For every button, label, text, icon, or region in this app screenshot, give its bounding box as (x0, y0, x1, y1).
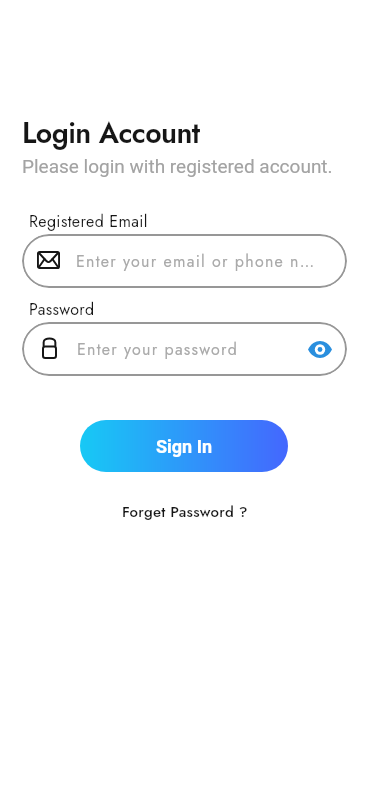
button[interactable]: Forget Password ? (122, 501, 248, 523)
staticText: Enter your email or phone n… (76, 250, 316, 273)
staticText: Registered Email (29, 210, 148, 233)
staticText: Please login with registered account. (22, 155, 333, 177)
other: Email (37, 251, 60, 269)
other: Password (42, 337, 57, 359)
button[interactable]: Show password (306, 335, 334, 363)
staticText: Sign In (156, 436, 213, 457)
staticText: Password (29, 298, 95, 321)
button[interactable]: Password (22, 322, 347, 376)
staticText: Forget Password ? (122, 501, 248, 523)
button[interactable]: Sign In (80, 420, 288, 472)
staticText: Login Account (22, 113, 200, 154)
staticText: Enter your password (77, 338, 306, 361)
button[interactable]: Email (22, 234, 347, 288)
